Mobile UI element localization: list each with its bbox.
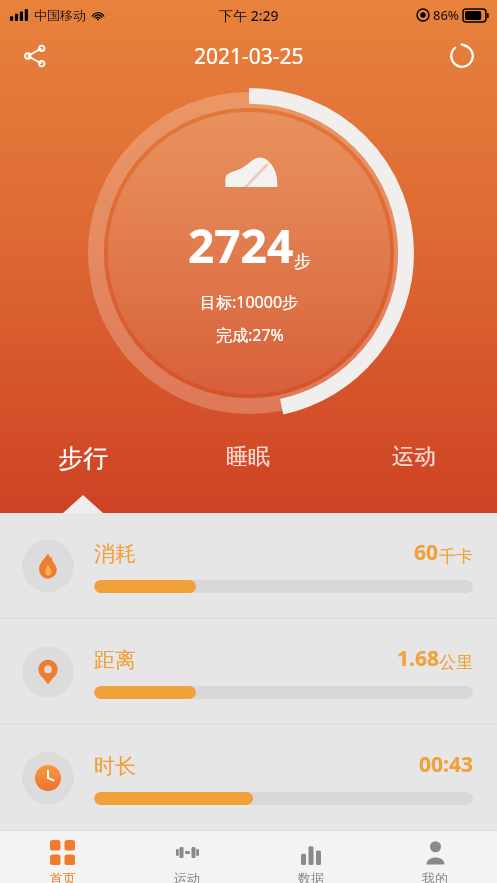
button[interactable]: 我的	[373, 831, 497, 883]
staticText: 距离	[94, 647, 136, 673]
button[interactable]: 距离	[0, 619, 497, 724]
button[interactable]: Share	[12, 33, 58, 79]
staticText: 首页	[50, 870, 76, 883]
staticText: 00:43	[419, 750, 473, 779]
button[interactable]: 睡眠	[165, 435, 331, 513]
staticText: 公里	[439, 652, 473, 673]
button[interactable]: 运动	[331, 435, 497, 513]
staticText: 我的	[422, 870, 448, 883]
button[interactable]: 数据	[249, 831, 373, 883]
staticText: 步行	[58, 443, 108, 474]
staticText: 睡眠	[226, 443, 270, 471]
button[interactable]: 运动	[125, 831, 249, 883]
staticText: 数据	[298, 870, 324, 883]
staticText: 完成:27%	[216, 324, 284, 346]
staticText: 1.68	[397, 644, 439, 673]
staticText: 下午 2:29	[219, 6, 279, 25]
staticText: 运动	[174, 870, 200, 883]
button[interactable]: Refresh	[439, 33, 485, 79]
staticText: 步	[294, 251, 311, 272]
button[interactable]: 时长	[0, 725, 497, 830]
staticText: 2021-03-25	[194, 42, 304, 71]
staticText: 中国移动	[34, 7, 86, 23]
staticText: 运动	[392, 443, 436, 471]
button[interactable]: 消耗	[0, 513, 497, 618]
staticText: 60	[414, 538, 439, 567]
button[interactable]: 首页	[0, 831, 125, 883]
staticText: 时长	[94, 753, 136, 779]
staticText: 千卡	[439, 546, 473, 567]
staticText: 消耗	[94, 541, 136, 567]
button[interactable]: 步行	[0, 435, 165, 513]
staticText: 目标:10000步	[200, 291, 299, 313]
staticText: 86%	[433, 6, 459, 24]
staticText: 2724	[188, 214, 294, 277]
